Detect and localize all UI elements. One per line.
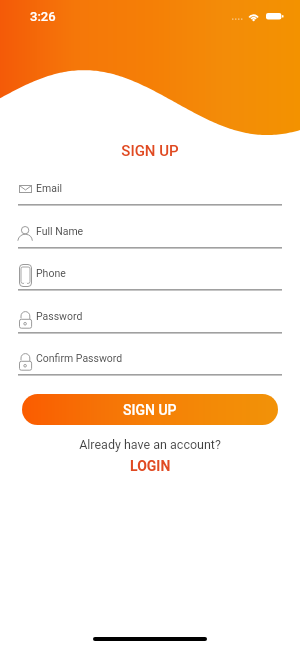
staticText: Confirm Password (36, 352, 123, 364)
button[interactable]: Confirm Password (0, 345, 300, 376)
other: Wi-Fi (248, 12, 260, 21)
staticText: Already have an account? (0, 437, 300, 452)
staticText: Email (36, 182, 62, 194)
staticText: 3:26 (30, 9, 56, 24)
staticText: SIGN UP (0, 142, 300, 160)
staticText: Phone (36, 267, 66, 279)
button[interactable]: SIGN UP (22, 394, 278, 425)
button[interactable]: Full Name (0, 218, 300, 249)
button[interactable]: Email (0, 175, 300, 206)
staticText: SIGN UP (123, 402, 177, 418)
other: Cellular signal (232, 18, 244, 21)
staticText: Full Name (36, 225, 84, 237)
staticText: Password (36, 310, 83, 322)
other: Battery (266, 13, 284, 20)
button[interactable]: Phone (0, 260, 300, 291)
button[interactable]: LOGIN (122, 456, 179, 476)
button[interactable]: Password (0, 303, 300, 334)
